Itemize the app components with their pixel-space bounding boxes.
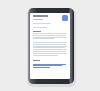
button[interactable]: Share [62,15,68,21]
